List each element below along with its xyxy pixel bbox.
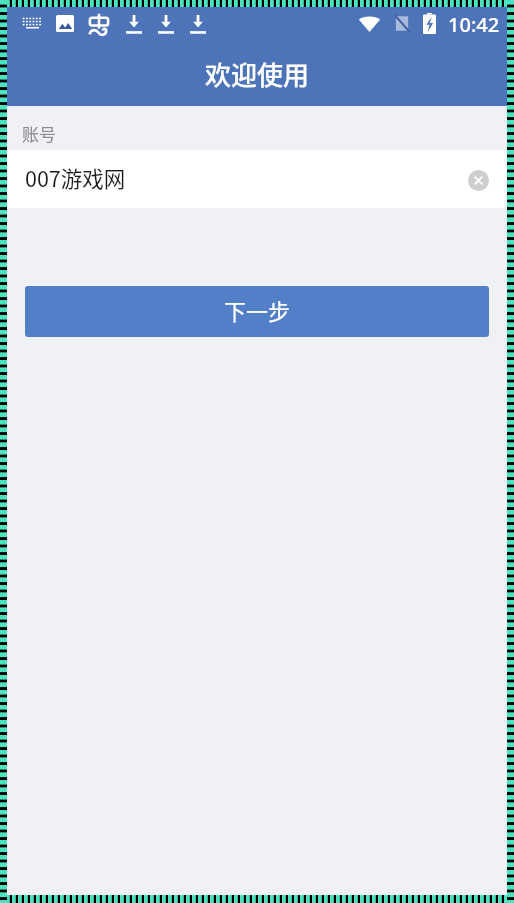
staticText: 欢迎使用 [205,55,310,93]
button[interactable]: Clear text [468,170,489,191]
button[interactable]: 007游戏网 [0,150,514,208]
staticText: 下一步 [224,294,291,326]
button[interactable]: 下一步 [25,286,489,337]
staticText: 007游戏网 [25,162,126,193]
staticText: 10:42 [448,11,500,38]
staticText: 账号 [22,121,56,146]
